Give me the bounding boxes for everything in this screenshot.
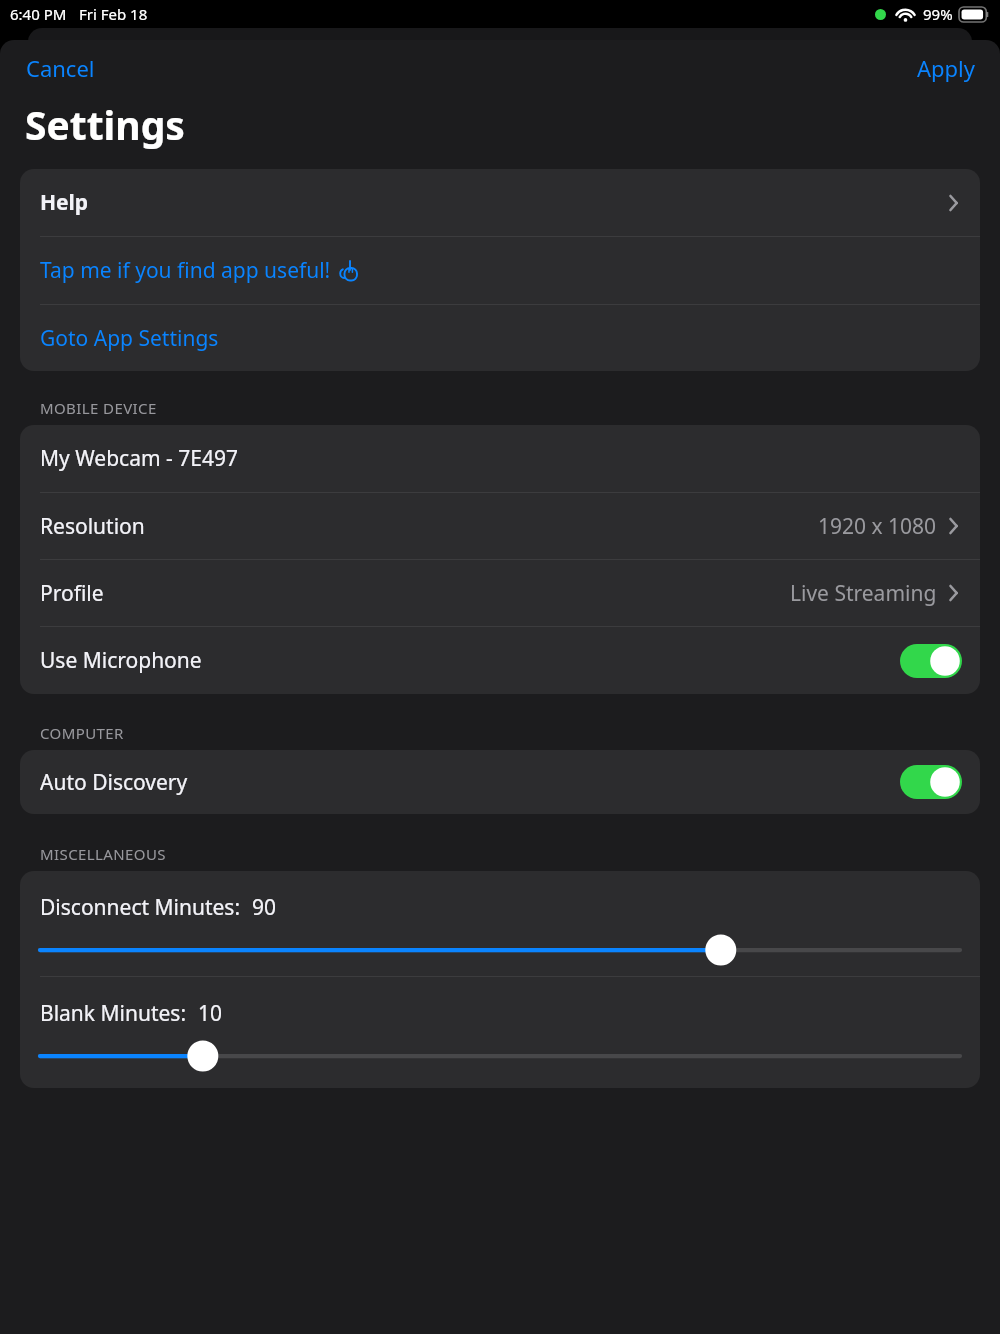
staticText: 90 [252,893,277,922]
button[interactable]: Use Microphone [20,627,980,694]
staticText: Goto App Settings [40,324,219,353]
button[interactable]: Blank Minutes: [20,977,980,1082]
button[interactable]: Goto App Settings [20,305,980,371]
staticText: Fri Feb 18 [79,4,148,24]
staticText: Settings [25,98,185,151]
staticText: Help [40,188,89,217]
staticText: MISCELLANEOUS [40,844,166,864]
button[interactable]: Disconnect Minutes: [20,871,980,976]
button[interactable]: Help [20,169,980,236]
staticText: Tap me if you find app useful! [40,256,331,285]
staticText: 6:40 PM [10,4,67,24]
staticText: MOBILE DEVICE [40,398,157,418]
staticText: My Webcam - 7E497 [40,444,238,473]
staticText: Disconnect Minutes: [40,893,241,922]
button[interactable]: Toggle on [900,765,962,799]
button[interactable]: Profile [20,560,980,626]
staticText: COMPUTER [40,723,124,743]
staticText: 10 [198,999,223,1028]
button[interactable]: Auto Discovery [20,750,980,814]
staticText: 99% [923,4,953,24]
button[interactable]: Cancel [0,45,121,91]
button[interactable]: My Webcam - 7E497 [20,425,980,492]
staticText: Auto Discovery [40,768,188,797]
button[interactable]: Toggle on [900,644,962,678]
staticText: Cancel [26,53,95,83]
staticText: Profile [40,579,104,608]
staticText: Blank Minutes: [40,999,187,1028]
staticText: Live Streaming [790,579,937,608]
staticText: Apply [917,53,976,83]
staticText: Resolution [40,512,145,541]
staticText: 1920 x 1080 [818,512,937,541]
staticText: Use Microphone [40,646,202,675]
button[interactable]: Apply [893,45,1000,91]
button[interactable]: Resolution [20,493,980,559]
button[interactable]: Tap me if you find app useful! [20,237,980,304]
